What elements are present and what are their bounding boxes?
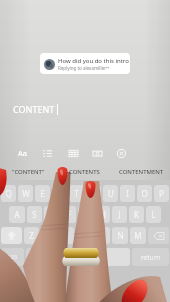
button[interactable]: W: [18, 185, 33, 202]
button[interactable]: I: [120, 185, 135, 202]
button[interactable]: H: [95, 206, 110, 223]
button[interactable]: P: [154, 185, 169, 202]
button[interactable]: CONTENTS: [56, 168, 113, 176]
staticText: T: [74, 188, 79, 199]
button[interactable]: Backspace: [148, 227, 169, 244]
button[interactable]: S: [27, 206, 42, 223]
button[interactable]: Q: [1, 185, 16, 202]
staticText: Aa: [18, 148, 27, 158]
staticText: O: [141, 188, 148, 199]
button[interactable]: return: [132, 248, 169, 266]
button[interactable]: Text style: [14, 145, 30, 161]
button[interactable]: D: [44, 206, 59, 223]
button[interactable]: O: [137, 185, 152, 202]
staticText: K: [134, 209, 139, 220]
button[interactable]: L: [146, 206, 161, 223]
staticText: CONTENTS: [69, 168, 100, 176]
staticText: space: [78, 253, 95, 261]
button[interactable]: 123: [1, 248, 24, 266]
staticText: V: [82, 230, 87, 241]
button[interactable]: space: [43, 248, 130, 266]
button[interactable]: J: [112, 206, 127, 223]
staticText: C: [63, 230, 69, 241]
button[interactable]: Camera: [89, 145, 105, 161]
staticText: return: [141, 253, 161, 262]
staticText: CONTENT: [13, 103, 55, 115]
button[interactable]: C: [58, 227, 74, 244]
button[interactable]: X: [41, 227, 56, 244]
staticText: P: [159, 188, 164, 199]
staticText: E: [40, 188, 45, 199]
button[interactable]: Table: [65, 145, 81, 161]
staticText: How did you do this intro: [58, 57, 129, 65]
button[interactable]: "CONTENT": [0, 168, 56, 176]
button[interactable]: K: [129, 206, 144, 223]
button[interactable]: G: [78, 206, 93, 223]
button[interactable]: F: [61, 206, 76, 223]
staticText: L: [151, 209, 156, 220]
button[interactable]: U: [103, 185, 118, 202]
staticText: CONTENTMENT: [119, 168, 164, 176]
button[interactable]: R: [52, 185, 67, 202]
button[interactable]: Sticker: [113, 145, 129, 161]
button[interactable]: A: [9, 206, 25, 223]
staticText: J: [118, 209, 121, 220]
button[interactable]: E: [35, 185, 50, 202]
button[interactable]: CONTENTMENT: [113, 168, 170, 176]
staticText: M: [134, 230, 142, 241]
button[interactable]: Y: [86, 185, 101, 202]
button[interactable]: Shift: [1, 227, 22, 244]
button[interactable]: Emoji: [26, 248, 41, 266]
button[interactable]: T: [69, 185, 84, 202]
staticText: S: [32, 209, 37, 220]
staticText: N: [117, 230, 124, 241]
staticText: U: [108, 188, 114, 199]
staticText: Z: [29, 230, 34, 241]
button[interactable]: Z: [24, 227, 39, 244]
staticText: D: [49, 209, 55, 220]
button[interactable]: M: [130, 227, 146, 244]
staticText: Y: [91, 188, 96, 199]
staticText: I: [126, 188, 129, 199]
button[interactable]: N: [112, 227, 128, 244]
staticText: Replying to alexamiller••: [58, 65, 110, 71]
staticText: W: [22, 188, 30, 199]
button[interactable]: How did you do this intro: [40, 53, 130, 74]
staticText: R: [57, 188, 62, 199]
staticText: B: [99, 230, 105, 241]
button[interactable]: List: [39, 145, 55, 161]
staticText: A: [14, 209, 20, 220]
button[interactable]: V: [76, 227, 92, 244]
staticText: 123: [7, 253, 18, 261]
staticText: Q: [5, 188, 12, 199]
staticText: F: [66, 209, 71, 220]
button[interactable]: B: [94, 227, 110, 244]
staticText: "CONTENT": [12, 168, 45, 176]
staticText: H: [100, 209, 106, 220]
